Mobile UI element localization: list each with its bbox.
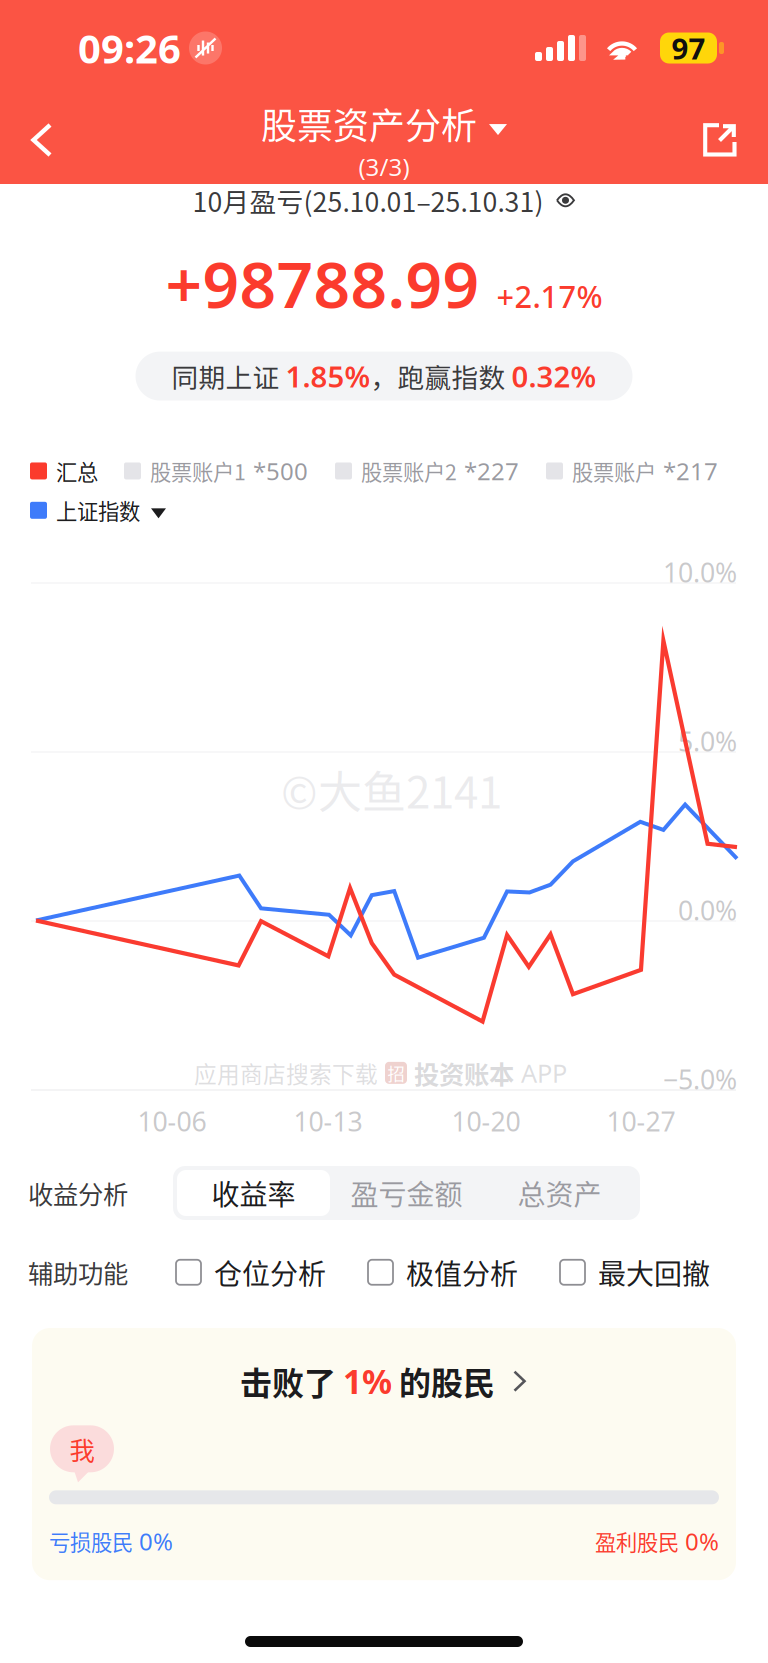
staticText: 0% xyxy=(679,1525,719,1557)
staticText: 股票账户 xyxy=(572,455,656,486)
button[interactable]: 股票账户1 xyxy=(124,455,308,487)
staticText: 10.0% xyxy=(663,554,737,590)
staticText: 1.85% xyxy=(285,357,370,396)
staticText: 0.0% xyxy=(678,892,737,928)
staticText: 股票账户1 xyxy=(150,455,246,486)
staticText: 收益分析 xyxy=(28,1175,128,1211)
staticText: 的股民 xyxy=(392,1358,495,1404)
staticText: *500 xyxy=(253,455,308,487)
staticText: 仓位分析 xyxy=(214,1252,326,1292)
button[interactable]: 击败了 xyxy=(32,1328,736,1580)
staticText: APP xyxy=(521,1056,567,1090)
button[interactable]: Share xyxy=(688,107,752,173)
button[interactable]: 总资产 xyxy=(483,1170,636,1216)
staticText: *217 xyxy=(663,455,718,487)
staticText: 股票资产分析 xyxy=(261,97,477,150)
staticText: 收益率 xyxy=(211,1173,295,1213)
staticText: 招 xyxy=(387,1060,404,1085)
staticText: 汇总 xyxy=(56,455,98,486)
staticText: 1% xyxy=(343,1359,392,1403)
staticText: 总资产 xyxy=(517,1173,601,1213)
button[interactable]: 收益率 xyxy=(177,1170,330,1216)
button[interactable]: 仓位分析 xyxy=(176,1252,326,1292)
staticText: 应用商店搜索下载 xyxy=(194,1056,378,1089)
staticText: 同期上证 xyxy=(171,357,285,395)
staticText: 10-13 xyxy=(293,1103,362,1139)
staticText: 盈亏金额 xyxy=(350,1173,462,1213)
staticText: 97 xyxy=(671,28,705,67)
staticText: +2.17% xyxy=(496,276,602,316)
staticText: 10月盈亏(25.10.01–25.10.31) xyxy=(192,181,543,220)
staticText: 09:26 xyxy=(78,21,181,74)
staticText: ，跑赢指数 xyxy=(370,357,511,395)
staticText: 极值分析 xyxy=(406,1252,518,1292)
staticText: 10-06 xyxy=(137,1103,206,1139)
staticText: 我 xyxy=(69,1430,94,1467)
staticText: 盈利股民 xyxy=(595,1526,679,1557)
button[interactable]: Back xyxy=(12,107,72,173)
staticText: (3/3) xyxy=(358,151,409,182)
staticText: 0.32% xyxy=(511,357,596,396)
staticText: 上证指数 xyxy=(56,495,140,526)
staticText: −5.0% xyxy=(663,1061,737,1097)
button[interactable]: 10月盈亏(25.10.01–25.10.31) xyxy=(192,178,575,223)
staticText: 10-27 xyxy=(606,1103,675,1139)
staticText: 股票账户2 xyxy=(361,455,457,486)
staticText: 击败了 xyxy=(240,1358,343,1404)
button[interactable]: 上证指数 xyxy=(30,495,140,526)
staticText: 最大回撤 xyxy=(598,1252,710,1292)
button[interactable]: 极值分析 xyxy=(368,1252,518,1292)
staticText: 亏损股民 xyxy=(49,1526,133,1557)
staticText: +98788.99 xyxy=(165,241,479,326)
button[interactable]: 股票账户2 xyxy=(335,455,519,487)
button[interactable]: 盈亏金额 xyxy=(330,1170,483,1216)
staticText: 投资账本 xyxy=(414,1054,514,1091)
staticText: 0% xyxy=(133,1525,173,1557)
staticText: ©大鱼2141 xyxy=(281,757,502,821)
button[interactable]: 最大回撤 xyxy=(560,1252,710,1292)
staticText: *227 xyxy=(464,455,519,487)
button[interactable]: 汇总 xyxy=(30,455,98,486)
staticText: 10-20 xyxy=(451,1103,520,1139)
staticText: 5.0% xyxy=(678,723,737,759)
staticText: 辅助功能 xyxy=(28,1254,128,1291)
button[interactable]: 股票账户 xyxy=(546,455,718,487)
